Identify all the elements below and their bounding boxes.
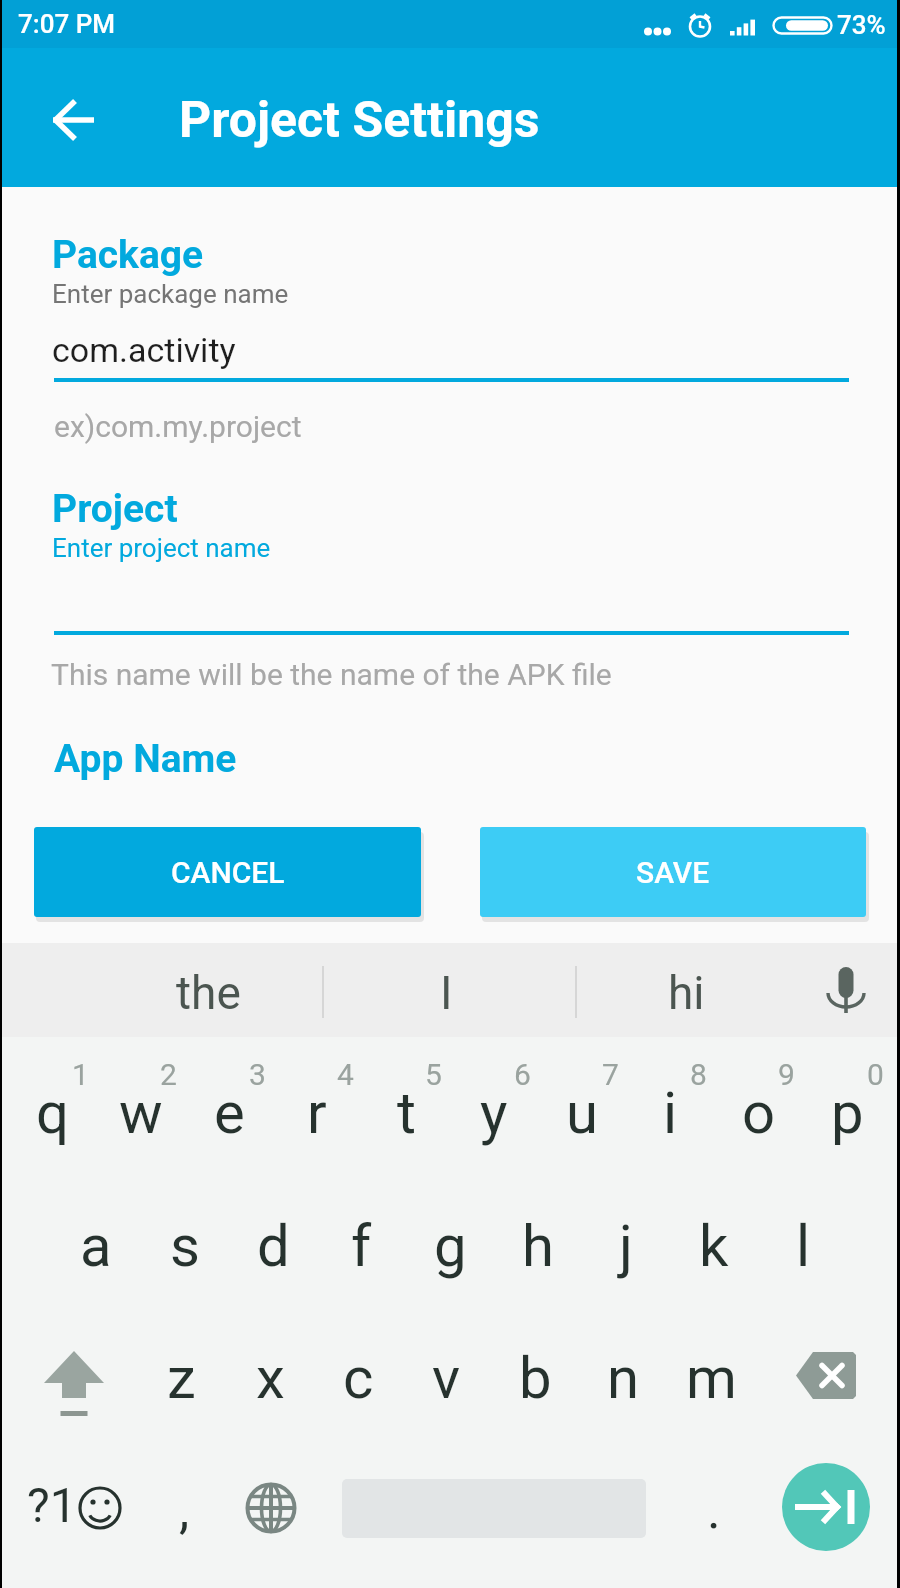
button[interactable]: x: [226, 1316, 314, 1448]
button[interactable]: y: [450, 1051, 538, 1183]
staticText: Project: [52, 486, 178, 532]
staticText: 73%: [837, 10, 886, 40]
staticText: a: [80, 1212, 112, 1280]
staticText: CANCEL: [171, 855, 285, 890]
button[interactable]: Shift: [30, 1321, 118, 1453]
button[interactable]: ,: [146, 1438, 222, 1578]
staticText: b: [519, 1344, 552, 1412]
button[interactable]: the: [98, 943, 318, 1037]
staticText: 8: [690, 1057, 707, 1092]
button[interactable]: j: [582, 1184, 670, 1316]
staticText: q: [36, 1079, 69, 1147]
button[interactable]: a: [52, 1184, 140, 1316]
staticText: d: [257, 1212, 290, 1280]
staticText: t: [397, 1079, 416, 1147]
staticText: o: [742, 1079, 776, 1147]
staticText: v: [432, 1344, 461, 1412]
button[interactable]: t: [362, 1051, 450, 1183]
staticText: 9: [778, 1057, 795, 1092]
staticText: h: [522, 1212, 554, 1280]
staticText: g: [434, 1212, 467, 1280]
staticText: ,: [179, 1480, 190, 1541]
button[interactable]: f: [317, 1184, 405, 1316]
button[interactable]: k: [670, 1184, 758, 1316]
staticText: 1: [72, 1057, 89, 1092]
staticText: r: [307, 1079, 327, 1147]
button[interactable]: SAVE: [480, 827, 866, 917]
button[interactable]: v: [402, 1316, 490, 1448]
staticText: x: [256, 1344, 285, 1412]
button[interactable]: Change language: [231, 1438, 311, 1578]
button[interactable]: l: [759, 1184, 847, 1316]
button[interactable]: Backspace: [782, 1317, 870, 1433]
button[interactable]: Enter: [782, 1463, 870, 1551]
button[interactable]: d: [229, 1184, 317, 1316]
staticText: e: [214, 1079, 245, 1147]
staticText: i: [663, 1079, 678, 1147]
staticText: 3: [249, 1057, 266, 1092]
staticText: s: [170, 1212, 200, 1280]
staticText: com.activity: [52, 330, 236, 370]
staticText: y: [480, 1079, 508, 1147]
button[interactable]: I: [336, 943, 556, 1037]
button[interactable]: z: [137, 1316, 225, 1448]
staticText: u: [566, 1079, 598, 1147]
staticText: f: [351, 1212, 372, 1280]
staticText: .: [707, 1480, 721, 1541]
staticText: 7:07 PM: [18, 9, 115, 39]
staticText: SAVE: [636, 855, 710, 890]
button[interactable]: n: [579, 1316, 667, 1448]
staticText: 6: [514, 1057, 531, 1092]
button[interactable]: e: [185, 1051, 273, 1183]
staticText: ex)com.my.project: [54, 409, 302, 444]
button[interactable]: r: [273, 1051, 361, 1183]
button[interactable]: Voice input: [793, 943, 898, 1037]
button[interactable]: .: [676, 1438, 752, 1578]
staticText: Project Settings: [179, 91, 540, 150]
staticText: w: [119, 1079, 163, 1147]
staticText: Enter package name: [52, 279, 289, 309]
staticText: 0: [867, 1057, 884, 1092]
staticText: 5: [425, 1057, 442, 1092]
staticText: App Name: [54, 736, 237, 782]
button[interactable]: hi: [576, 943, 796, 1037]
button[interactable]: c: [314, 1316, 402, 1448]
staticText: 4: [337, 1057, 354, 1092]
button[interactable]: i: [626, 1051, 714, 1183]
button[interactable]: m: [667, 1316, 755, 1448]
button[interactable]: p: [803, 1051, 891, 1183]
button[interactable]: u: [538, 1051, 626, 1183]
button[interactable]: q: [8, 1051, 96, 1183]
staticText: the: [176, 966, 241, 1020]
button[interactable]: s: [141, 1184, 229, 1316]
button[interactable]: g: [406, 1184, 494, 1316]
button[interactable]: h: [494, 1184, 582, 1316]
staticText: I: [440, 966, 453, 1020]
staticText: 2: [160, 1057, 177, 1092]
button[interactable]: w: [97, 1051, 185, 1183]
staticText: c: [343, 1344, 374, 1412]
staticText: This name will be the name of the APK fi…: [51, 657, 612, 692]
staticText: n: [607, 1344, 640, 1412]
staticText: l: [796, 1212, 811, 1280]
staticText: hi: [668, 966, 705, 1020]
staticText: ?1: [27, 1477, 77, 1533]
button[interactable]: b: [491, 1316, 579, 1448]
button[interactable]: Symbols and emoji: [10, 1438, 140, 1578]
staticText: Enter project name: [52, 533, 271, 563]
staticText: k: [699, 1212, 729, 1280]
staticText: m: [686, 1344, 737, 1412]
staticText: z: [167, 1344, 196, 1412]
button[interactable]: CANCEL: [34, 827, 421, 917]
button[interactable]: Back: [27, 74, 119, 166]
staticText: 7: [602, 1057, 619, 1092]
staticText: Package: [52, 232, 204, 278]
staticText: j: [619, 1212, 633, 1280]
staticText: p: [831, 1079, 864, 1147]
button[interactable]: o: [715, 1051, 803, 1183]
